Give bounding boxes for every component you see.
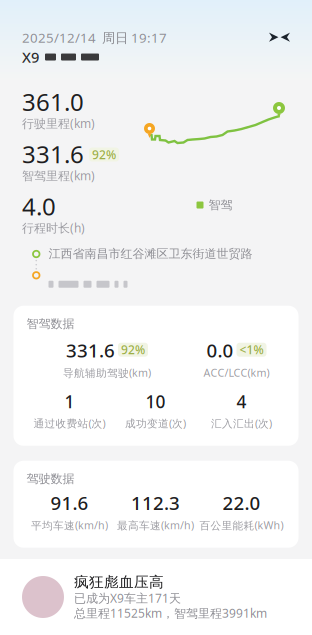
staticText: 行驶里程(km) — [22, 115, 95, 131]
staticText: 智驾数据 — [26, 316, 74, 331]
staticText: 4 — [236, 390, 246, 413]
staticText: 汇入汇出(次) — [211, 416, 272, 430]
staticText: 江西省南昌市红谷滩区卫东街道世贸路 — [48, 246, 252, 261]
staticText: 22.0 — [222, 490, 260, 515]
staticText: 百公里能耗(kWh) — [199, 518, 283, 532]
staticText: 疯狂彪血压高 — [74, 573, 164, 591]
staticText: 行程时长(h) — [22, 220, 85, 236]
staticText: 驾驶数据 — [26, 471, 74, 486]
staticText: 总里程11525km，智驾里程3991km — [74, 605, 267, 621]
staticText: 成功变道(次) — [125, 416, 186, 430]
staticText: ACC/LCC(km) — [203, 366, 269, 380]
staticText: 1 — [64, 390, 74, 413]
staticText: 92% — [121, 342, 145, 358]
staticText: 2025/12/14 周日 19:17 — [22, 29, 167, 46]
staticText: 智驾里程(km) — [22, 168, 95, 183]
staticText: 导航辅助驾驶(km) — [63, 366, 151, 380]
staticText: 智驾 — [208, 198, 232, 212]
staticText: X9 — [22, 47, 39, 67]
button[interactable]: 疯狂彪血压高 — [0, 559, 312, 635]
staticText: 91.6 — [50, 490, 88, 515]
staticText: 通过收费站(次) — [33, 416, 105, 430]
staticText: 平均车速(km/h) — [31, 518, 108, 532]
button[interactable]: 小鹏汽车 — [269, 32, 290, 43]
staticText: 已成为X9车主171天 — [74, 590, 181, 606]
staticText: 331.6 — [22, 138, 84, 170]
staticText: 361.0 — [22, 86, 84, 118]
staticText: 112.3 — [131, 490, 180, 515]
staticText: 92% — [92, 147, 116, 162]
staticText: 最高车速(km/h) — [117, 518, 194, 532]
staticText: 4.0 — [22, 190, 56, 222]
staticText: 10 — [145, 390, 165, 413]
staticText: 0.0 — [206, 338, 233, 363]
staticText: 331.6 — [66, 338, 115, 363]
staticText: <1% — [239, 342, 263, 358]
